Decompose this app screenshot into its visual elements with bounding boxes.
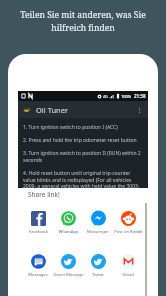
button[interactable]: Facebook [23, 211, 53, 235]
staticText: 21:38 [134, 93, 146, 99]
staticText: 4. Hold reset button until original trip… [23, 170, 143, 196]
button[interactable]: Gmail [113, 254, 143, 278]
button[interactable]: More options [133, 104, 145, 116]
staticText: Teilen Sie mit anderen, was Sie hilfreic… [8, 9, 158, 34]
staticText: 3. Turn ignition switch to position II (… [23, 150, 143, 164]
staticText: Tweet [92, 272, 104, 278]
button[interactable]: Tweet [83, 254, 113, 278]
staticText: Direct Message [53, 272, 83, 278]
staticText: Share link! [28, 190, 60, 199]
staticText: 4G [103, 94, 108, 99]
staticText: 100% [121, 94, 132, 99]
button[interactable]: WhatsApp [53, 211, 83, 235]
staticText: 1. Turn ignition switch to position I (A… [23, 124, 118, 131]
staticText: Gmail [122, 272, 134, 278]
staticText: Oil Tuner [36, 105, 69, 115]
button[interactable]: Direct Message [53, 254, 83, 278]
button[interactable]: Post on Reddit [113, 211, 143, 235]
staticText: Post on Reddit [114, 229, 143, 235]
button[interactable]: Messenger [83, 211, 113, 235]
staticText: 2. Press and hold the trip odometer rese… [23, 137, 137, 144]
staticText: Facebook [29, 229, 48, 235]
button[interactable]: Messages [23, 254, 53, 278]
staticText: Messenger [87, 229, 109, 235]
staticText: Messages [28, 272, 48, 278]
staticText: WhatsApp [58, 229, 79, 235]
